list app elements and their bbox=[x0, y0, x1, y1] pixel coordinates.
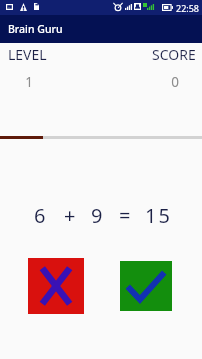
staticText: SCORE bbox=[152, 45, 196, 64]
staticText: 0 bbox=[154, 73, 196, 91]
staticText: 15 bbox=[145, 202, 172, 229]
staticText: 9 bbox=[91, 202, 103, 229]
staticText: + bbox=[64, 202, 76, 229]
staticText: = bbox=[119, 202, 131, 229]
staticText: 22:58 bbox=[176, 2, 200, 14]
button[interactable]: Correct answer bbox=[120, 261, 172, 311]
staticText: Brain Guru bbox=[8, 22, 63, 36]
staticText: LEVEL bbox=[8, 45, 47, 64]
button[interactable]: Wrong answer bbox=[28, 258, 84, 314]
staticText: 1 bbox=[10, 73, 48, 91]
staticText: 6 bbox=[34, 202, 46, 229]
